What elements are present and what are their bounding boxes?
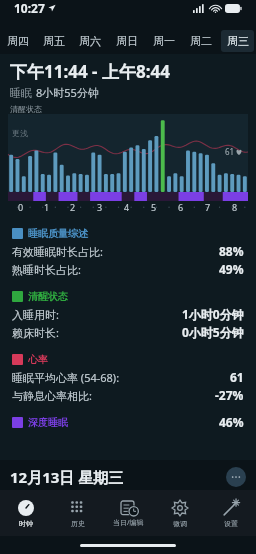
button[interactable]: 微调 (154, 490, 205, 536)
staticText: -27% (215, 387, 244, 403)
staticText: 8小时55分钟 (36, 85, 99, 100)
staticText: 5 (151, 201, 157, 213)
staticText: 61 (230, 369, 244, 385)
staticText: 49% (219, 261, 244, 277)
staticText: 更浅 (12, 128, 28, 138)
staticText: 入睡用时: (12, 307, 59, 322)
button[interactable]: 设置 (205, 490, 256, 536)
staticText: 清醒状态 (28, 290, 68, 303)
staticText: 清醒状态 (10, 104, 42, 114)
staticText: 深度睡眠 (28, 416, 68, 429)
button[interactable]: 周五 (38, 30, 70, 52)
staticText: 睡眠平均心率 (54-68): (12, 370, 120, 385)
button[interactable]: 深度睡眠 (12, 414, 244, 430)
button[interactable]: 周四 (2, 30, 34, 52)
staticText: 睡眠质量综述 (28, 227, 88, 240)
staticText: 46% (219, 414, 244, 430)
staticText: 7 (205, 201, 211, 213)
staticText: 10:27 (14, 0, 45, 16)
staticText: 61 (225, 146, 235, 157)
staticText: 周日 (116, 34, 138, 48)
staticText: 周六 (79, 34, 101, 48)
staticText: 0 (18, 201, 24, 213)
staticText: 1小时0分钟 (182, 306, 244, 322)
staticText: 微调 (173, 519, 187, 528)
staticText: 周一 (153, 34, 175, 48)
staticText: 88% (219, 243, 244, 259)
button[interactable]: 周日 (110, 30, 143, 52)
staticText: 0小时5分钟 (182, 324, 244, 340)
button[interactable]: 更多 (226, 467, 246, 487)
staticText: 周四 (7, 34, 29, 48)
staticText: 下午11:44 - 上午8:44 (10, 60, 170, 83)
staticText: 睡眠 (10, 86, 32, 100)
button[interactable]: 清醒状态 (12, 290, 244, 303)
staticText: 6 (178, 201, 184, 213)
staticText: 12月13日 星期三 (10, 467, 124, 487)
staticText: 2 (70, 201, 76, 213)
button[interactable]: 周三 (221, 30, 254, 52)
button[interactable]: 时钟 (0, 490, 52, 536)
staticText: 赖床时长: (12, 325, 59, 340)
button[interactable]: 心率 (12, 353, 244, 366)
staticText: 3 (97, 201, 103, 213)
staticText: 心率 (28, 353, 48, 366)
button[interactable]: 当日/编辑 (103, 490, 154, 536)
staticText: 当日/编辑 (113, 518, 144, 528)
button[interactable]: 周一 (147, 30, 180, 52)
staticText: 8 (232, 201, 238, 213)
staticText: 与静息心率相比: (12, 388, 92, 403)
staticText: 周五 (43, 34, 65, 48)
staticText: 熟睡时长占比: (12, 262, 81, 277)
staticText: 周二 (190, 34, 212, 48)
button[interactable]: 周二 (184, 30, 217, 52)
staticText: 时钟 (19, 519, 33, 528)
staticText: 有效睡眠时长占比: (12, 244, 103, 259)
staticText: 设置 (224, 519, 238, 528)
staticText: 周三 (227, 34, 249, 48)
button[interactable]: 睡眠质量综述 (12, 227, 244, 240)
button[interactable]: 12月13日 星期三 (10, 464, 246, 490)
staticText: 4 (124, 201, 130, 213)
staticText: 历史 (71, 519, 85, 528)
button[interactable]: 历史 (52, 490, 103, 536)
staticText: 1 (44, 201, 50, 213)
button[interactable]: 周六 (74, 30, 106, 52)
